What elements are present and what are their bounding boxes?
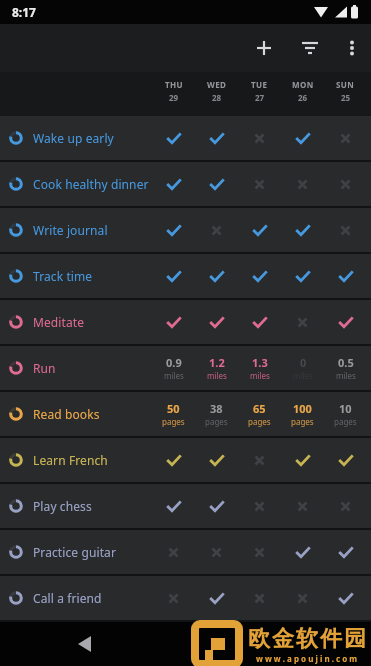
button[interactable]: Practice guitar — [0, 530, 371, 574]
button[interactable] — [324, 484, 367, 528]
button[interactable] — [195, 530, 238, 574]
button[interactable] — [195, 116, 238, 160]
button[interactable]: Write journal — [0, 208, 371, 252]
button[interactable] — [238, 530, 281, 574]
staticText: miles — [250, 370, 270, 381]
button[interactable] — [241, 24, 287, 72]
button[interactable] — [152, 438, 195, 482]
button[interactable]: Wake up early — [0, 116, 371, 160]
button[interactable] — [281, 576, 324, 620]
button[interactable] — [68, 628, 100, 660]
button[interactable] — [152, 162, 195, 206]
button[interactable] — [281, 484, 324, 528]
button[interactable] — [324, 530, 367, 574]
staticText: Run — [33, 360, 152, 376]
button[interactable] — [152, 576, 195, 620]
button[interactable] — [195, 208, 238, 252]
staticText: Learn French — [33, 452, 152, 468]
button[interactable] — [281, 254, 324, 298]
button[interactable]: 50 — [152, 392, 195, 436]
button[interactable] — [195, 300, 238, 344]
button[interactable] — [238, 576, 281, 620]
button[interactable]: 100 — [281, 392, 324, 436]
button[interactable] — [195, 484, 238, 528]
button[interactable]: Cook healthy dinner — [0, 162, 371, 206]
button[interactable] — [238, 208, 281, 252]
button[interactable] — [324, 576, 367, 620]
button[interactable] — [324, 438, 367, 482]
button[interactable] — [281, 530, 324, 574]
button[interactable]: 0 — [281, 346, 324, 390]
staticText: miles — [207, 370, 227, 381]
staticText: pages — [248, 416, 271, 427]
button[interactable]: 65 — [238, 392, 281, 436]
button[interactable] — [195, 254, 238, 298]
staticText: Play chess — [33, 498, 152, 514]
staticText: WED — [207, 79, 227, 90]
button[interactable] — [195, 438, 238, 482]
staticText: 29 — [169, 92, 179, 103]
button[interactable]: 38 — [195, 392, 238, 436]
button[interactable] — [281, 116, 324, 160]
button[interactable]: 10 — [324, 392, 367, 436]
button[interactable] — [281, 208, 324, 252]
button[interactable] — [152, 530, 195, 574]
staticText: 8:17 — [12, 4, 36, 20]
button[interactable] — [152, 300, 195, 344]
button[interactable] — [238, 116, 281, 160]
staticText: Read books — [33, 406, 152, 422]
staticText: Wake up early — [33, 130, 152, 146]
staticText: Track time — [33, 268, 152, 284]
button[interactable] — [152, 116, 195, 160]
staticText: SUN — [336, 79, 355, 90]
button[interactable]: 0.9 — [152, 346, 195, 390]
button[interactable] — [238, 254, 281, 298]
button[interactable] — [324, 116, 367, 160]
button[interactable]: 0.5 — [324, 346, 367, 390]
staticText: 0 — [300, 355, 307, 370]
button[interactable] — [238, 300, 281, 344]
button[interactable]: Meditate — [0, 300, 371, 344]
staticText: 28 — [212, 92, 222, 103]
button[interactable]: Run — [0, 346, 371, 390]
button[interactable] — [281, 162, 324, 206]
staticText: miles — [336, 370, 356, 381]
button[interactable] — [152, 484, 195, 528]
staticText: 1.3 — [252, 355, 268, 370]
button[interactable] — [324, 300, 367, 344]
button[interactable]: Learn French — [0, 438, 371, 482]
button[interactable] — [238, 484, 281, 528]
staticText: Write journal — [33, 222, 152, 238]
staticText: 26 — [298, 92, 308, 103]
staticText: miles — [293, 370, 313, 381]
button[interactable] — [152, 208, 195, 252]
staticText: miles — [164, 370, 184, 381]
staticText: 38 — [210, 401, 223, 416]
staticText: 欧金软件园 — [247, 625, 367, 653]
staticText: 25 — [341, 92, 351, 103]
button[interactable] — [152, 254, 195, 298]
button[interactable]: 1.2 — [195, 346, 238, 390]
button[interactable] — [238, 438, 281, 482]
button[interactable] — [287, 24, 333, 72]
staticText: 0.9 — [166, 355, 182, 370]
button[interactable]: Play chess — [0, 484, 371, 528]
button[interactable]: Track time — [0, 254, 371, 298]
button[interactable] — [281, 438, 324, 482]
staticText: MON — [292, 79, 314, 90]
button[interactable] — [333, 24, 371, 72]
button[interactable] — [195, 576, 238, 620]
button[interactable] — [324, 254, 367, 298]
staticText: THU — [165, 79, 183, 90]
staticText: pages — [205, 416, 228, 427]
button[interactable] — [324, 162, 367, 206]
button[interactable] — [238, 162, 281, 206]
button[interactable] — [324, 208, 367, 252]
button[interactable]: Call a friend — [0, 576, 371, 620]
staticText: Meditate — [33, 314, 152, 330]
button[interactable]: 1.3 — [238, 346, 281, 390]
button[interactable]: Read books — [0, 392, 371, 436]
staticText: Practice guitar — [33, 544, 152, 560]
button[interactable] — [195, 162, 238, 206]
button[interactable] — [281, 300, 324, 344]
